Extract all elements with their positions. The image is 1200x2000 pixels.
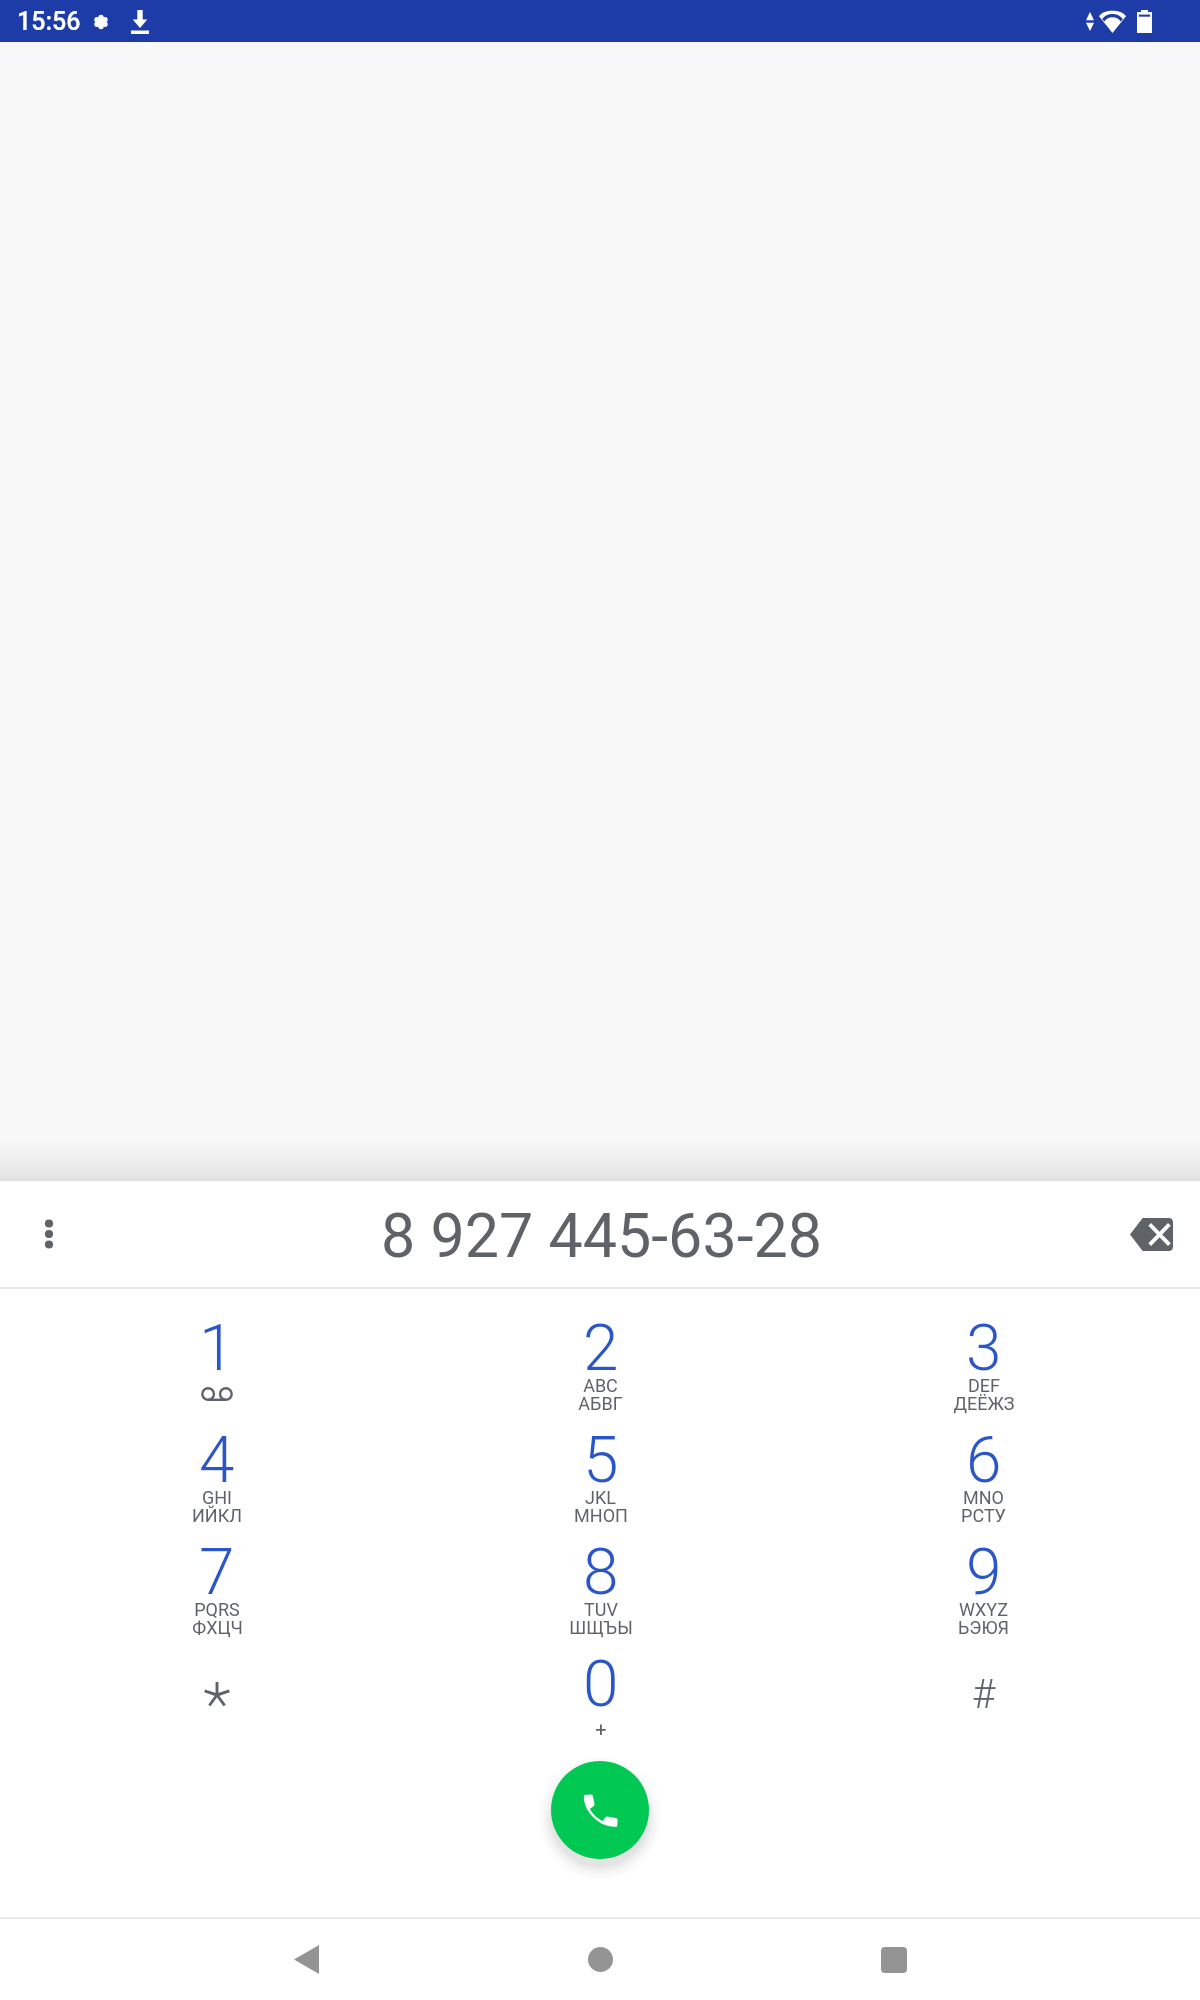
button[interactable]: [25, 1647, 409, 1759]
staticText: ФХЦЧ: [192, 1617, 243, 1638]
staticText: DEF: [968, 1375, 1000, 1396]
staticText: GHI: [202, 1487, 232, 1508]
staticText: 9: [966, 1535, 1002, 1610]
staticText: 7: [199, 1535, 235, 1610]
staticText: TUV: [584, 1599, 618, 1620]
staticText: 6: [966, 1423, 1002, 1498]
staticText: WXYZ: [959, 1599, 1008, 1620]
staticText: ABC: [583, 1375, 618, 1396]
staticText: ЬЭЮЯ: [958, 1617, 1009, 1638]
staticText: MNO: [963, 1487, 1004, 1508]
button[interactable]: Backspace: [1107, 1190, 1195, 1278]
staticText: 1: [199, 1311, 235, 1386]
button[interactable]: 2: [409, 1311, 792, 1423]
staticText: АБВГ: [578, 1393, 623, 1414]
staticText: 5: [583, 1423, 619, 1498]
staticText: РСТУ: [961, 1505, 1006, 1526]
button[interactable]: 8: [409, 1535, 792, 1647]
staticText: 8 927 445-63-28: [381, 1200, 823, 1271]
button[interactable]: Recents: [844, 1919, 944, 2000]
button[interactable]: Home: [550, 1919, 650, 2000]
staticText: +: [595, 1717, 607, 1740]
button[interactable]: 7: [25, 1535, 409, 1647]
button[interactable]: 6: [792, 1423, 1175, 1535]
staticText: 3: [966, 1311, 1002, 1386]
staticText: ШЩЪЫ: [569, 1617, 633, 1638]
button[interactable]: More options: [3, 1188, 95, 1280]
button[interactable]: 4: [25, 1423, 409, 1535]
staticText: 4: [199, 1423, 235, 1498]
staticText: ИЙКЛ: [192, 1505, 242, 1526]
button[interactable]: 0: [409, 1647, 792, 1759]
staticText: #: [972, 1671, 996, 1718]
button[interactable]: 9: [792, 1535, 1175, 1647]
staticText: 15:56: [17, 7, 81, 36]
staticText: МНОП: [574, 1505, 628, 1526]
staticText: ДЕЁЖЗ: [953, 1393, 1015, 1414]
staticText: 0: [583, 1647, 619, 1722]
staticText: PQRS: [194, 1599, 240, 1620]
button[interactable]: Back: [256, 1919, 356, 2000]
staticText: 8: [583, 1535, 619, 1610]
button[interactable]: 1: [25, 1311, 409, 1423]
button[interactable]: Call: [551, 1761, 649, 1859]
button[interactable]: #: [792, 1647, 1175, 1759]
button[interactable]: 3: [792, 1311, 1175, 1423]
staticText: JKL: [585, 1487, 616, 1508]
staticText: 2: [583, 1311, 619, 1386]
button[interactable]: 5: [409, 1423, 792, 1535]
